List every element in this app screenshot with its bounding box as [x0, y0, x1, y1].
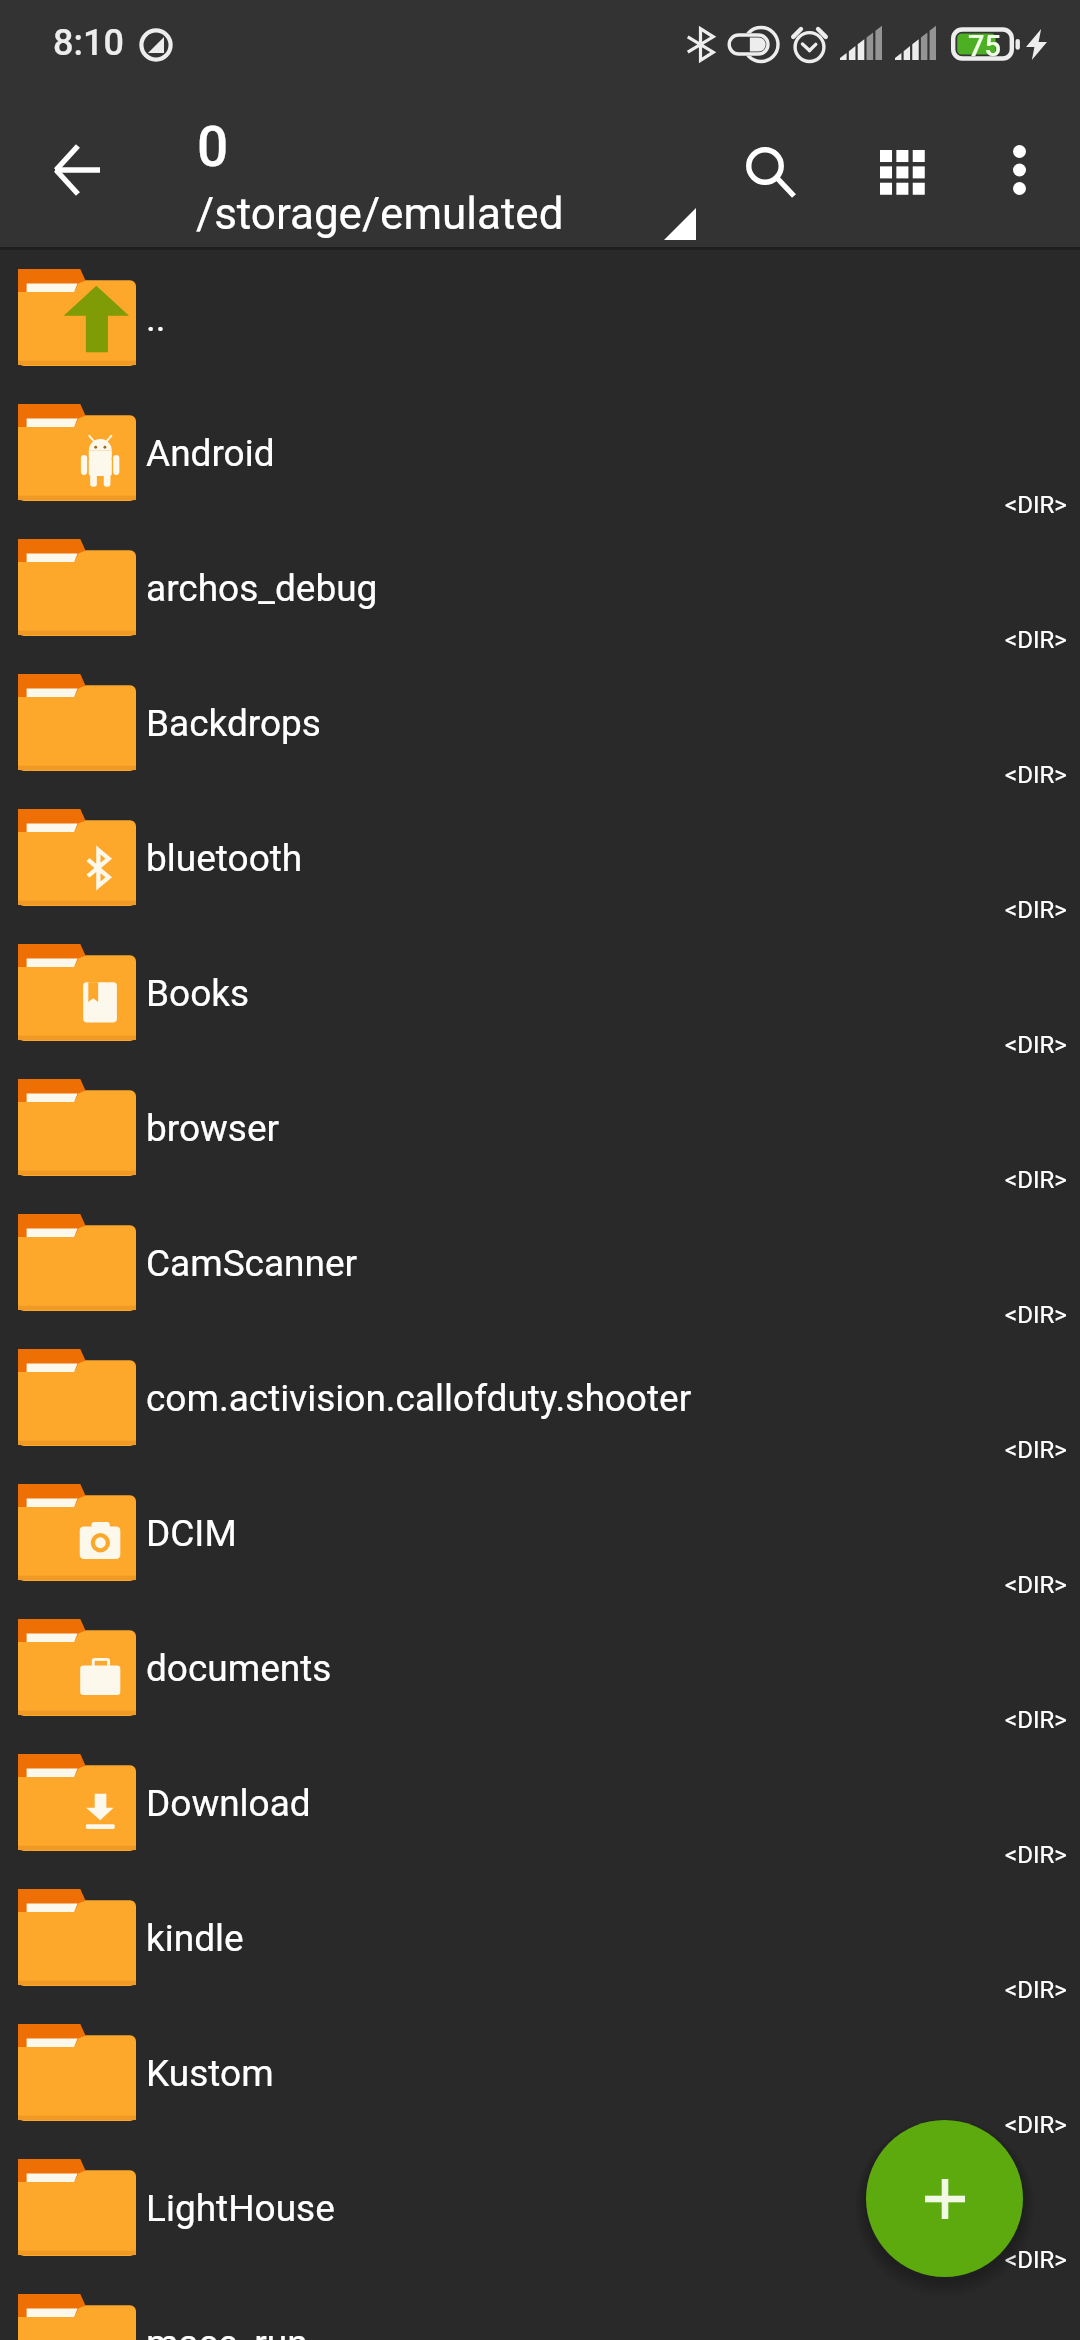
staticText: Android	[146, 432, 275, 475]
button[interactable]: Download	[0, 1740, 1080, 1875]
staticText: Backdrops	[146, 702, 321, 745]
button[interactable]: Android	[0, 390, 1080, 525]
staticText: DCIM	[146, 1512, 237, 1555]
staticText: browser	[146, 1107, 280, 1150]
button[interactable]: com.activision.callofduty.shooter	[0, 1335, 1080, 1470]
staticText: bluetooth	[146, 837, 303, 880]
button[interactable]: Kustom	[0, 2010, 1080, 2145]
staticText: 8:10	[53, 22, 124, 64]
button[interactable]: Switch to grid view	[854, 110, 950, 234]
button[interactable]: Books	[0, 930, 1080, 1065]
staticText: CamScanner	[146, 1242, 358, 1285]
button[interactable]: Add new item	[866, 2120, 1023, 2277]
staticText: <DIR>	[1005, 761, 1067, 789]
staticText: <DIR>	[1005, 2246, 1067, 2274]
button[interactable]: bluetooth	[0, 795, 1080, 930]
staticText: ..	[146, 297, 166, 340]
staticText: Kustom	[146, 2052, 274, 2095]
staticText: <DIR>	[1005, 1031, 1067, 1059]
staticText: com.activision.callofduty.shooter	[146, 1377, 692, 1420]
staticText: <DIR>	[1005, 2111, 1067, 2139]
staticText: Download	[146, 1782, 311, 1825]
button[interactable]: More options	[970, 108, 1068, 232]
staticText: 0	[197, 115, 229, 179]
button[interactable]: Navigate up	[27, 116, 127, 224]
staticText: <DIR>	[1005, 491, 1067, 519]
staticText: archos_debug	[146, 567, 378, 610]
staticText: <DIR>	[1005, 1841, 1067, 1869]
button[interactable]: DCIM	[0, 1470, 1080, 1605]
staticText: mace_run	[146, 2322, 308, 2340]
button[interactable]: CamScanner	[0, 1200, 1080, 1335]
staticText: <DIR>	[1005, 896, 1067, 924]
staticText: Books	[146, 972, 250, 1015]
button[interactable]: archos_debug	[0, 525, 1080, 660]
button[interactable]: Search	[722, 111, 822, 235]
staticText: <DIR>	[1005, 1571, 1067, 1599]
staticText: <DIR>	[1005, 1301, 1067, 1329]
button[interactable]: kindle	[0, 1875, 1080, 2010]
button[interactable]: browser	[0, 1065, 1080, 1200]
staticText: 75	[968, 29, 1001, 61]
staticText: <DIR>	[1005, 626, 1067, 654]
staticText: <DIR>	[1005, 1706, 1067, 1734]
staticText: /storage/emulated	[196, 188, 564, 240]
button[interactable]: documents	[0, 1605, 1080, 1740]
staticText: <DIR>	[1005, 1436, 1067, 1464]
staticText: kindle	[146, 1917, 244, 1960]
button[interactable]: Backdrops	[0, 660, 1080, 795]
button[interactable]: ..	[0, 255, 1080, 390]
staticText: <DIR>	[1005, 1166, 1067, 1194]
staticText: documents	[146, 1647, 332, 1690]
staticText: <DIR>	[1005, 1976, 1067, 2004]
staticText: LightHouse	[146, 2187, 335, 2230]
button[interactable]: LightHouse	[0, 2145, 1080, 2280]
button[interactable]: mace_run	[0, 2280, 1080, 2340]
